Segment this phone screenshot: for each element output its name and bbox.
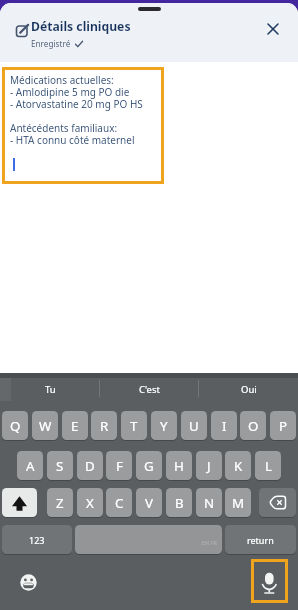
button[interactable]: K	[225, 451, 251, 480]
button[interactable]: N	[196, 488, 222, 517]
staticText: K	[234, 457, 243, 475]
staticText: F	[116, 457, 123, 475]
button[interactable]: Tu	[0, 378, 100, 401]
button[interactable]: return	[225, 525, 296, 554]
staticText: I	[222, 417, 227, 435]
staticText: Z	[56, 494, 64, 512]
staticText: P	[279, 417, 288, 435]
staticText: N	[204, 494, 215, 512]
staticText: S	[56, 457, 64, 475]
staticText: G	[144, 457, 154, 475]
button[interactable]: A	[17, 451, 43, 480]
staticText: W	[39, 417, 52, 435]
staticText: R	[100, 417, 109, 435]
button[interactable]: I	[211, 411, 237, 440]
staticText: B	[175, 494, 184, 512]
button[interactable]: G	[136, 451, 162, 480]
staticText: Enregistré	[31, 38, 71, 49]
staticText: 123	[29, 534, 45, 546]
button[interactable]: Oui	[199, 378, 298, 401]
staticText: H	[174, 457, 184, 475]
button[interactable]: P	[270, 411, 296, 440]
staticText: C	[115, 494, 124, 512]
button[interactable]: S	[47, 451, 73, 480]
button[interactable]: Y	[151, 411, 177, 440]
button[interactable]: O	[240, 411, 266, 440]
button[interactable]: U	[181, 411, 207, 440]
button[interactable]: 123	[2, 525, 72, 554]
button[interactable]: C'est	[100, 378, 199, 401]
staticText: E	[71, 417, 79, 435]
button[interactable]	[259, 15, 287, 43]
button[interactable]: B	[166, 488, 192, 517]
staticText: EN FR	[202, 539, 217, 546]
staticText: C'est	[139, 383, 160, 396]
staticText: J	[207, 457, 211, 475]
button[interactable]: R	[91, 411, 117, 440]
button[interactable]: F	[106, 451, 132, 480]
button[interactable]	[12, 566, 44, 598]
button[interactable]: J	[196, 451, 222, 480]
staticText: Oui	[241, 383, 257, 396]
staticText: L	[265, 457, 272, 475]
button[interactable]: L	[255, 451, 281, 480]
button[interactable]: M	[225, 488, 251, 517]
button[interactable]: D	[77, 451, 103, 480]
button[interactable]: E	[62, 411, 88, 440]
button[interactable]: T	[121, 411, 147, 440]
button[interactable]: C	[106, 488, 132, 517]
staticText: Détails cliniques	[31, 18, 131, 35]
button[interactable]	[2, 67, 164, 184]
button[interactable]: V	[136, 488, 162, 517]
button[interactable]: H	[166, 451, 192, 480]
button[interactable]: Q	[2, 411, 28, 440]
staticText: T	[130, 417, 138, 435]
staticText: Q	[10, 417, 21, 435]
staticText: X	[86, 494, 94, 512]
button[interactable]	[251, 559, 288, 603]
staticText: O	[248, 417, 259, 435]
button[interactable]: Z	[47, 488, 73, 517]
staticText: A	[26, 457, 35, 475]
staticText: Tu	[45, 383, 56, 396]
button[interactable]	[2, 488, 37, 517]
staticText: Y	[160, 417, 168, 435]
staticText: M	[232, 494, 245, 512]
staticText: Médications actuelles: - Amlodipine 5 mg…	[10, 73, 143, 147]
staticText: U	[189, 417, 199, 435]
button[interactable]	[75, 525, 222, 554]
staticText: D	[85, 457, 95, 475]
button[interactable]: X	[77, 488, 103, 517]
staticText: V	[145, 494, 153, 512]
button[interactable]	[259, 488, 296, 517]
staticText: return	[247, 534, 274, 546]
button[interactable]: W	[32, 411, 58, 440]
